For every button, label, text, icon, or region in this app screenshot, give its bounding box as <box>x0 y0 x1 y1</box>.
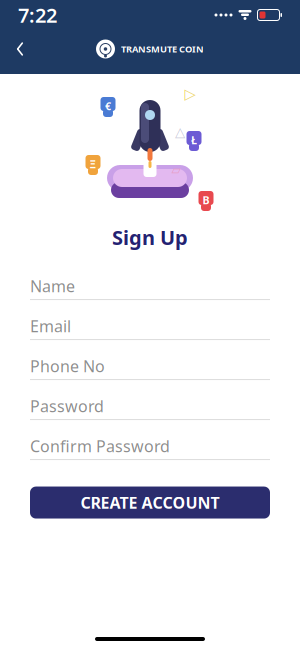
staticText: Phone No <box>30 355 105 377</box>
staticText: CREATE ACCOUNT <box>80 492 219 513</box>
staticText: 7:22 <box>18 2 57 28</box>
staticText: Name <box>30 275 75 297</box>
staticText: TRANSMUTE COIN <box>121 43 204 55</box>
staticText: ▷ <box>184 86 195 102</box>
staticText: € <box>105 99 111 113</box>
button[interactable]: Back <box>0 30 40 68</box>
staticText: Ξ <box>89 157 96 171</box>
button[interactable]: Phone No <box>30 353 270 381</box>
staticText: Email <box>30 315 71 337</box>
staticText: Sign Up <box>112 224 188 251</box>
button[interactable]: Password <box>30 393 270 421</box>
staticText: △ <box>175 124 185 139</box>
button[interactable]: Name <box>30 273 270 301</box>
staticText: Confirm Password <box>30 435 170 457</box>
button[interactable]: Confirm Password <box>30 433 270 461</box>
staticText: Ł <box>191 133 197 147</box>
staticText: Password <box>30 395 104 417</box>
button[interactable]: Email <box>30 313 270 341</box>
staticText: B <box>202 193 209 207</box>
staticText: ▱ <box>171 163 180 177</box>
button[interactable]: CREATE ACCOUNT <box>30 487 270 519</box>
